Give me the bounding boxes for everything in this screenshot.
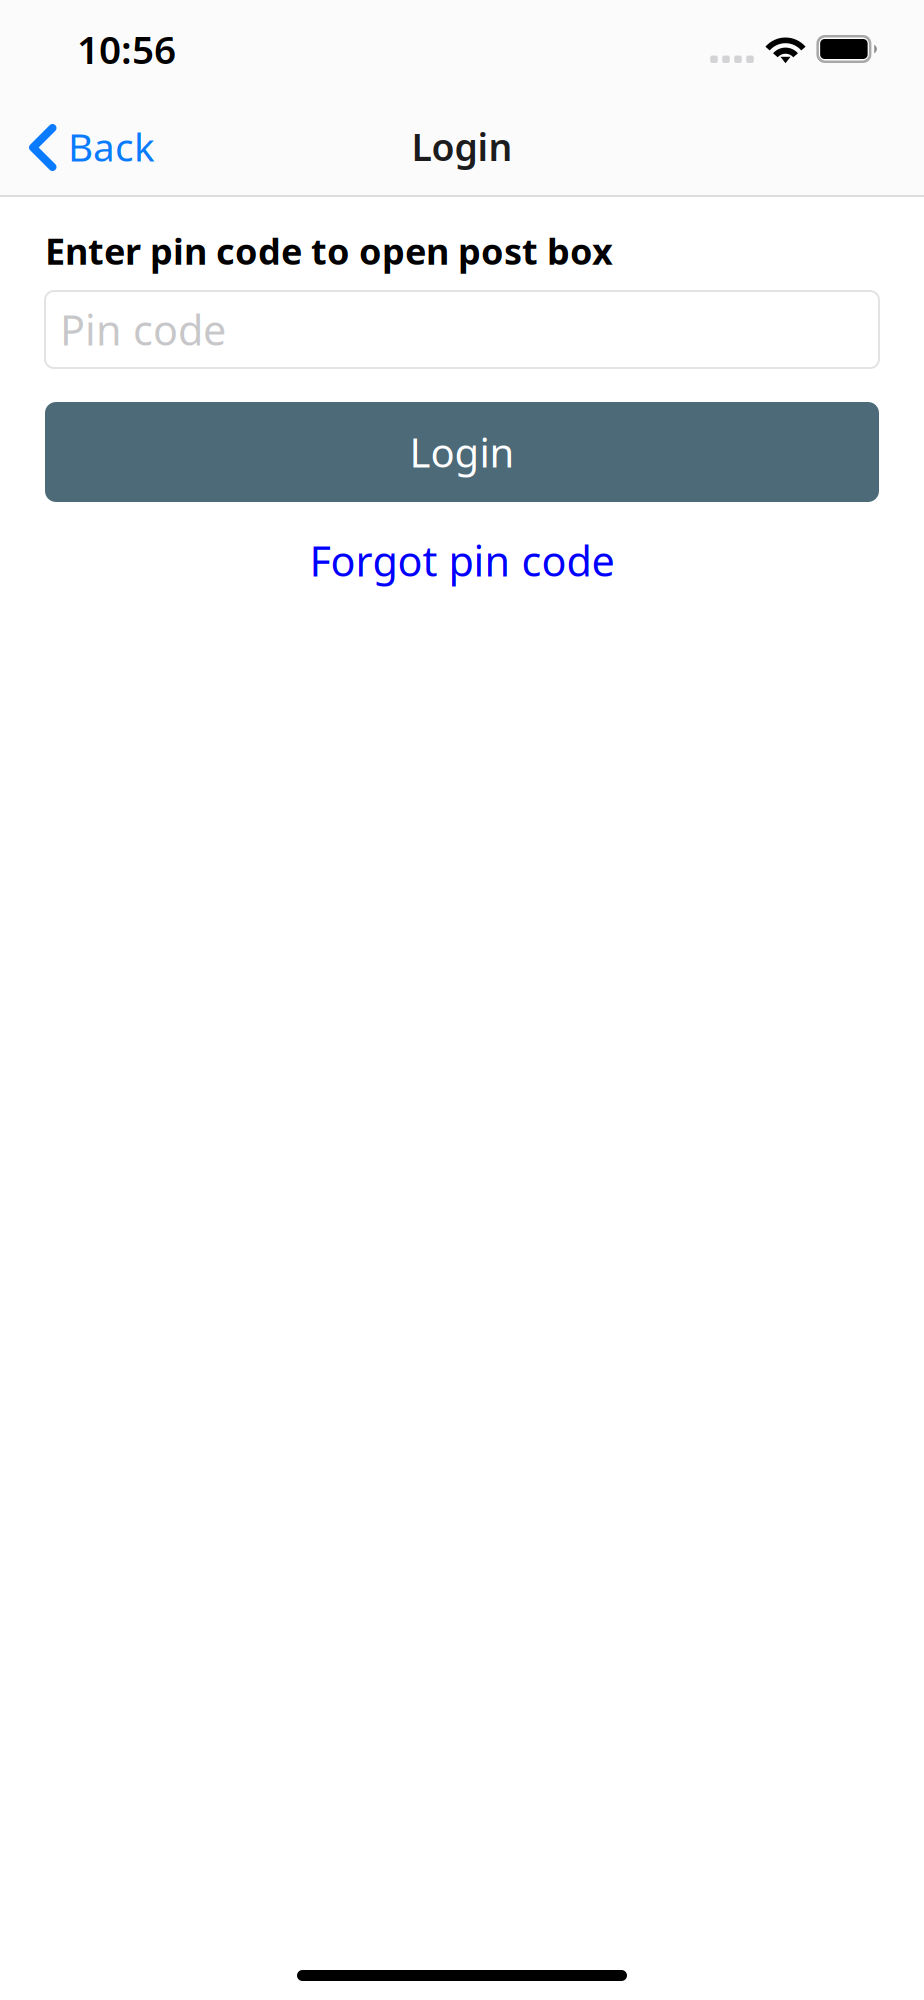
staticText: Login	[411, 122, 512, 171]
staticText: Forgot pin code	[309, 533, 614, 588]
textField[interactable]: Pin code	[45, 291, 879, 368]
button[interactable]: Back	[0, 98, 179, 195]
staticText: Back	[68, 121, 155, 172]
staticText: Login	[409, 425, 514, 478]
button[interactable]: Login	[45, 402, 879, 502]
button[interactable]: Forgot pin code	[45, 502, 879, 598]
staticText: Enter pin code to open post box	[45, 227, 613, 275]
staticText: 10:56	[77, 23, 176, 75]
staticText: Pin code	[60, 302, 226, 357]
